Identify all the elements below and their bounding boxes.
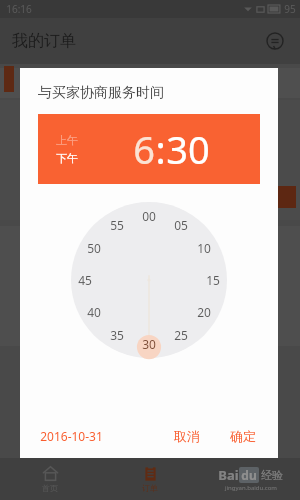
staticText: 下午 xyxy=(56,151,78,165)
button[interactable]: 取消 xyxy=(164,424,210,448)
staticText: 45 xyxy=(78,272,92,288)
staticText: 与买家协商服务时间 xyxy=(38,84,164,102)
button[interactable]: 25 xyxy=(170,324,192,346)
staticText: 订单 xyxy=(142,483,158,493)
button[interactable]: 30 xyxy=(166,123,210,175)
staticText: 05 xyxy=(174,217,188,233)
staticText: 首页 xyxy=(42,483,58,493)
staticText: 15 xyxy=(206,272,220,288)
staticText: 经验 xyxy=(261,468,283,482)
button[interactable]: 6 xyxy=(133,123,155,175)
staticText: 30 xyxy=(142,336,156,352)
button[interactable]: 30 xyxy=(138,333,160,355)
staticText: 2016-10-31 xyxy=(40,428,103,444)
button[interactable]: 50 xyxy=(83,237,105,259)
staticText: 取消 xyxy=(174,428,200,444)
staticText: 确定 xyxy=(230,428,256,444)
button[interactable]: 55 xyxy=(106,214,128,236)
button[interactable]: 确定 xyxy=(224,424,262,448)
button[interactable]: 05 xyxy=(170,214,192,236)
staticText: 00 xyxy=(142,208,156,224)
staticText: Bai xyxy=(218,466,239,484)
button[interactable]: 订单 xyxy=(100,458,200,500)
button[interactable]: 15 xyxy=(202,269,224,291)
button[interactable]: 上午 xyxy=(56,133,78,165)
staticText: : xyxy=(155,123,166,175)
staticText: 35 xyxy=(110,327,124,343)
staticText: 10 xyxy=(197,240,211,256)
button[interactable]: 45 xyxy=(74,269,96,291)
staticText: 55 xyxy=(110,217,124,233)
staticText: 我的订单 xyxy=(12,31,76,51)
staticText: 50 xyxy=(87,240,101,256)
button[interactable]: 35 xyxy=(106,324,128,346)
button[interactable]: 10 xyxy=(193,237,215,259)
staticText: 95 xyxy=(284,2,296,16)
button[interactable]: 00 xyxy=(138,205,160,227)
staticText: 40 xyxy=(87,304,101,320)
button[interactable]: 40 xyxy=(83,301,105,323)
staticText: 25 xyxy=(174,327,188,343)
button[interactable]: 20 xyxy=(193,301,215,323)
staticText: 16:16 xyxy=(6,2,32,16)
staticText: jingyan.baidu.com xyxy=(225,484,277,492)
button[interactable]: Messages xyxy=(262,28,288,54)
staticText: 20 xyxy=(197,304,211,320)
button[interactable]: 首页 xyxy=(0,458,100,500)
staticText: du xyxy=(241,467,257,483)
button[interactable]: 2016-10-31 xyxy=(36,424,107,448)
staticText: 上午 xyxy=(56,133,78,147)
